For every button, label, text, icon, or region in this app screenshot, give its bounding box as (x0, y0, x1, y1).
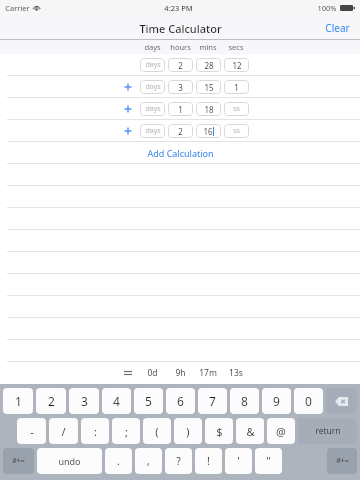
staticText: : (94, 424, 97, 439)
staticText: 6 (177, 393, 184, 409)
button[interactable]: / (49, 418, 78, 444)
button[interactable]: 2 (36, 388, 66, 414)
staticText: 3 (178, 82, 183, 93)
staticText: undo (58, 455, 81, 467)
staticText: days (145, 126, 161, 136)
button[interactable]: 1 (3, 388, 33, 414)
button[interactable]: $ (205, 418, 233, 444)
button[interactable]: days (140, 124, 165, 138)
button[interactable]: days (140, 80, 165, 94)
staticText: 16 (203, 126, 213, 137)
button[interactable]: 1 (168, 102, 193, 116)
button[interactable]: ; (112, 418, 140, 444)
button[interactable]: ' (225, 448, 252, 474)
button[interactable]: 15 (196, 80, 221, 94)
button[interactable]: 3 (168, 80, 193, 94)
staticText: 8 (241, 393, 248, 409)
button[interactable]: 0 (294, 388, 323, 414)
staticText: 9 (273, 393, 280, 409)
button[interactable]: 2 (168, 58, 193, 72)
button[interactable]: Add row (119, 122, 137, 140)
staticText: 1 (234, 82, 239, 93)
button[interactable]: 6 (166, 388, 195, 414)
button[interactable]: " (255, 448, 282, 474)
button[interactable]: 16 (196, 124, 221, 138)
button[interactable]: - (17, 418, 46, 444)
button[interactable]: return (298, 418, 357, 444)
staticText: $ (216, 424, 223, 439)
button[interactable]: days (140, 102, 165, 116)
staticText: 0 (305, 393, 312, 409)
button[interactable]: & (236, 418, 264, 444)
button[interactable]: 1 (224, 80, 249, 94)
button[interactable]: @ (267, 418, 295, 444)
staticText: 2 (178, 126, 183, 137)
button[interactable]: ss (224, 102, 249, 116)
button[interactable]: ! (195, 448, 222, 474)
staticText: 18 (204, 104, 214, 115)
staticText: - (30, 424, 34, 439)
staticText: 13s (229, 367, 243, 379)
staticText: Time Calculator (139, 21, 222, 36)
button[interactable]: 4 (102, 388, 131, 414)
button[interactable]: 18 (196, 102, 221, 116)
button[interactable]: #+= (327, 448, 357, 474)
staticText: ) (186, 424, 190, 439)
staticText: Carrier (5, 3, 30, 13)
staticText: . (117, 454, 120, 468)
button[interactable]: #+= (3, 448, 34, 474)
button[interactable]: 12 (224, 58, 249, 72)
button[interactable]: ) (174, 418, 202, 444)
staticText: 1 (178, 104, 183, 115)
staticText: ( (155, 424, 159, 439)
staticText: #+= (12, 456, 25, 466)
staticText: ss (233, 104, 240, 114)
staticText: 4 (113, 393, 120, 409)
staticText: 3 (81, 393, 88, 409)
staticText: 28 (204, 60, 214, 71)
staticText: 15 (204, 82, 214, 93)
staticText: & (246, 424, 255, 439)
staticText: mins (199, 42, 217, 52)
staticText: return (315, 425, 341, 437)
staticText: days (145, 60, 161, 70)
staticText: 9h (175, 367, 186, 379)
button[interactable]: . (105, 448, 132, 474)
button[interactable]: ? (165, 448, 192, 474)
staticText: #+= (336, 456, 349, 466)
staticText: 2 (178, 60, 183, 71)
staticText: ! (207, 454, 210, 468)
button[interactable]: ( (143, 418, 171, 444)
button[interactable]: undo (37, 448, 102, 474)
button[interactable]: Clear (315, 16, 360, 40)
button[interactable]: Add row (119, 100, 137, 118)
button[interactable]: 5 (134, 388, 163, 414)
staticText: ; (125, 424, 128, 439)
button[interactable]: 9 (262, 388, 291, 414)
button[interactable]: Add Calculation (137, 143, 224, 163)
staticText: 17m (199, 367, 217, 379)
staticText: " (266, 454, 271, 468)
staticText: secs (228, 42, 244, 52)
staticText: 100% (317, 3, 337, 13)
staticText: 0d (147, 367, 158, 379)
button[interactable]: Add row (119, 78, 137, 96)
button[interactable]: 2 (168, 124, 193, 138)
button[interactable]: days (140, 58, 165, 72)
staticText: days (145, 104, 161, 114)
button[interactable]: Backspace (326, 388, 357, 414)
button[interactable]: 3 (69, 388, 99, 414)
staticText: , (147, 454, 150, 468)
button[interactable]: 8 (230, 388, 259, 414)
staticText: days (145, 82, 161, 92)
button[interactable]: ss (224, 124, 249, 138)
staticText: 5 (145, 393, 152, 409)
staticText: 2 (48, 393, 55, 409)
button[interactable]: 7 (198, 388, 227, 414)
staticText: hours (170, 42, 191, 52)
staticText: @ (276, 424, 286, 439)
button[interactable]: : (81, 418, 109, 444)
button[interactable]: , (135, 448, 162, 474)
staticText: 12 (232, 60, 242, 71)
button[interactable]: 28 (196, 58, 221, 72)
